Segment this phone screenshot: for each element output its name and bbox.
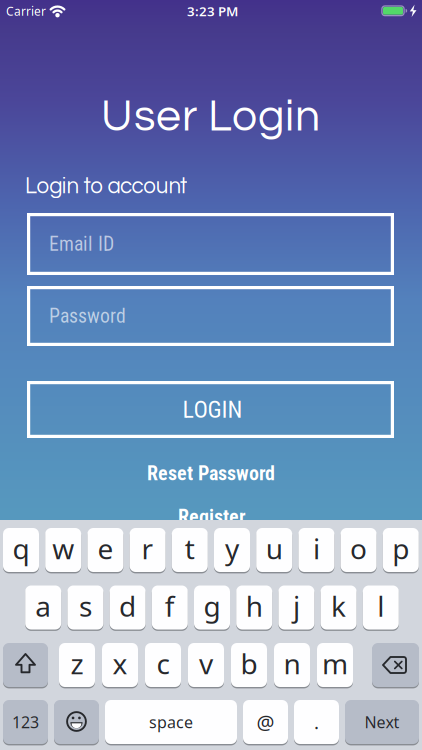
staticText: Email ID <box>49 232 114 255</box>
staticText: Reset Password <box>147 462 275 485</box>
staticText: Next <box>364 711 399 733</box>
staticText: User Login <box>101 94 320 140</box>
button[interactable]: g <box>194 584 230 630</box>
staticText: v <box>199 645 213 682</box>
button[interactable]: t <box>172 527 208 573</box>
staticText: Login to account <box>25 175 187 198</box>
button[interactable]: k <box>321 584 357 630</box>
staticText: i <box>313 530 320 567</box>
button[interactable]: q <box>3 527 39 573</box>
staticText: p <box>392 530 409 567</box>
staticText: m <box>322 645 348 682</box>
button[interactable] <box>3 642 48 688</box>
staticText: b <box>240 645 257 682</box>
button[interactable]: Email ID <box>27 213 394 275</box>
staticText: y <box>225 530 239 567</box>
staticText: d <box>119 587 136 625</box>
staticText: r <box>142 530 154 567</box>
staticText: space <box>149 711 193 733</box>
button[interactable]: c <box>145 642 181 688</box>
staticText: x <box>112 645 127 682</box>
staticText: LOGIN <box>182 395 242 423</box>
button[interactable]: Register <box>178 505 246 529</box>
staticText: n <box>283 645 300 682</box>
button[interactable]: Next <box>345 699 419 745</box>
button[interactable]: y <box>214 527 250 573</box>
staticText: 3:23 PM <box>187 2 238 20</box>
button[interactable]: b <box>231 642 267 688</box>
button[interactable]: i <box>298 527 334 573</box>
button[interactable]: l <box>363 584 399 630</box>
button[interactable]: v <box>188 642 224 688</box>
staticText: 123 <box>12 711 39 733</box>
staticText: j <box>293 587 300 625</box>
button[interactable]: 123 <box>3 699 48 745</box>
button[interactable]: s <box>67 584 103 630</box>
button[interactable]: @ <box>243 699 288 745</box>
button[interactable]: u <box>256 527 292 573</box>
button[interactable]: LOGIN <box>27 381 394 438</box>
staticText: e <box>97 530 113 567</box>
staticText: q <box>12 530 29 567</box>
staticText: Password <box>49 304 126 327</box>
button[interactable]: x <box>102 642 138 688</box>
staticText: k <box>331 587 346 625</box>
button[interactable]: f <box>152 584 188 630</box>
button[interactable]: space <box>105 699 237 745</box>
button[interactable]: r <box>130 527 166 573</box>
staticText: Carrier <box>6 3 46 19</box>
staticText: s <box>79 587 92 625</box>
button[interactable] <box>54 699 99 745</box>
button[interactable]: w <box>45 527 81 573</box>
staticText: a <box>35 587 51 625</box>
staticText: z <box>70 645 83 682</box>
button[interactable]: h <box>236 584 272 630</box>
button[interactable]: m <box>317 642 353 688</box>
staticText: w <box>52 530 74 567</box>
button[interactable]: o <box>341 527 377 573</box>
button[interactable]: n <box>274 642 310 688</box>
button[interactable]: Password <box>27 286 394 346</box>
button[interactable]: p <box>383 527 419 573</box>
button[interactable]: a <box>25 584 61 630</box>
button[interactable]: Reset Password <box>147 462 275 485</box>
staticText: o <box>350 530 367 567</box>
staticText: h <box>246 587 263 625</box>
staticText: c <box>156 645 169 682</box>
staticText: u <box>266 530 283 567</box>
staticText: t <box>185 530 195 567</box>
button[interactable]: z <box>59 642 95 688</box>
button[interactable]: j <box>278 584 314 630</box>
staticText: Register <box>178 505 246 529</box>
staticText: g <box>203 587 220 625</box>
button[interactable] <box>372 642 419 688</box>
staticText: . <box>314 710 319 734</box>
staticText: l <box>377 587 384 625</box>
button[interactable]: d <box>110 584 146 630</box>
staticText: f <box>165 587 175 625</box>
button[interactable]: e <box>87 527 123 573</box>
button[interactable]: . <box>294 699 339 745</box>
staticText: @ <box>256 709 274 735</box>
